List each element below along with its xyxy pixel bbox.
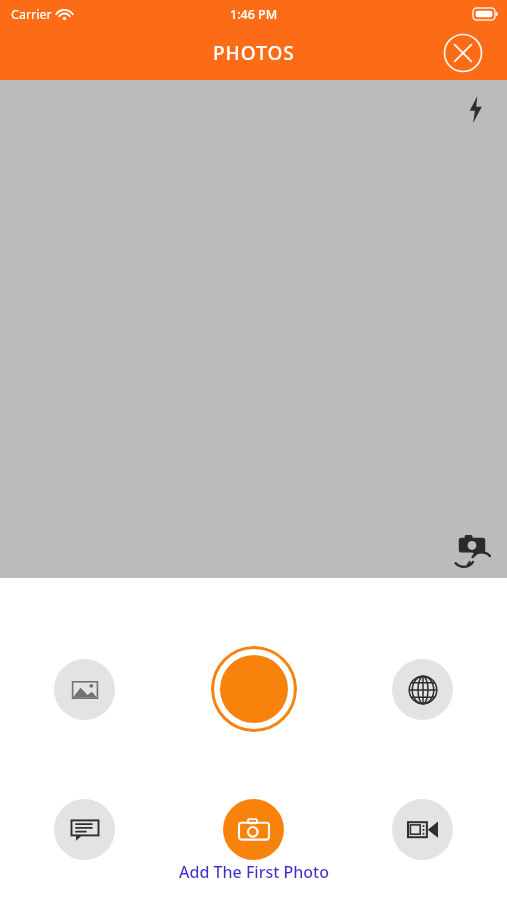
button[interactable]: Take photo <box>211 646 297 732</box>
staticText: PHOTOS <box>213 40 295 66</box>
button[interactable]: Add The First Photo <box>179 861 329 883</box>
button[interactable]: Switch camera <box>450 528 494 572</box>
button[interactable]: Gallery <box>54 659 115 720</box>
button[interactable]: Web <box>392 659 453 720</box>
staticText: 1:46 PM <box>230 6 278 23</box>
button[interactable]: Close <box>442 32 484 74</box>
button[interactable]: Flash <box>457 91 493 127</box>
button[interactable]: Camera <box>223 799 284 860</box>
button[interactable]: Comment <box>54 799 115 860</box>
staticText: Carrier <box>11 6 52 23</box>
button[interactable]: Video <box>392 799 453 860</box>
